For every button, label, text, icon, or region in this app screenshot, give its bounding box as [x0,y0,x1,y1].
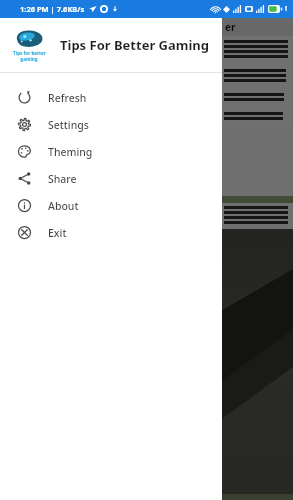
button[interactable]: Theming [0,138,222,165]
staticText: gaming [20,56,38,62]
button[interactable]: Share [0,165,222,192]
staticText: Refresh [48,91,87,105]
staticText: Exit [48,226,67,240]
staticText: ! [285,4,287,14]
button[interactable]: Refresh [0,84,222,111]
staticText: Settings [48,118,89,132]
staticText: About [48,199,79,213]
staticText: 1:26 PM | 7.6KB/s [20,4,85,14]
staticText: Share [48,172,77,186]
staticText: er [225,20,236,34]
button[interactable]: About [0,192,222,219]
button[interactable]: Settings [0,111,222,138]
button[interactable]: Exit [0,219,222,246]
staticText: Theming [48,145,93,159]
staticText: Tips For Better Gaming [60,36,210,54]
staticText: Tips for better [13,50,46,56]
